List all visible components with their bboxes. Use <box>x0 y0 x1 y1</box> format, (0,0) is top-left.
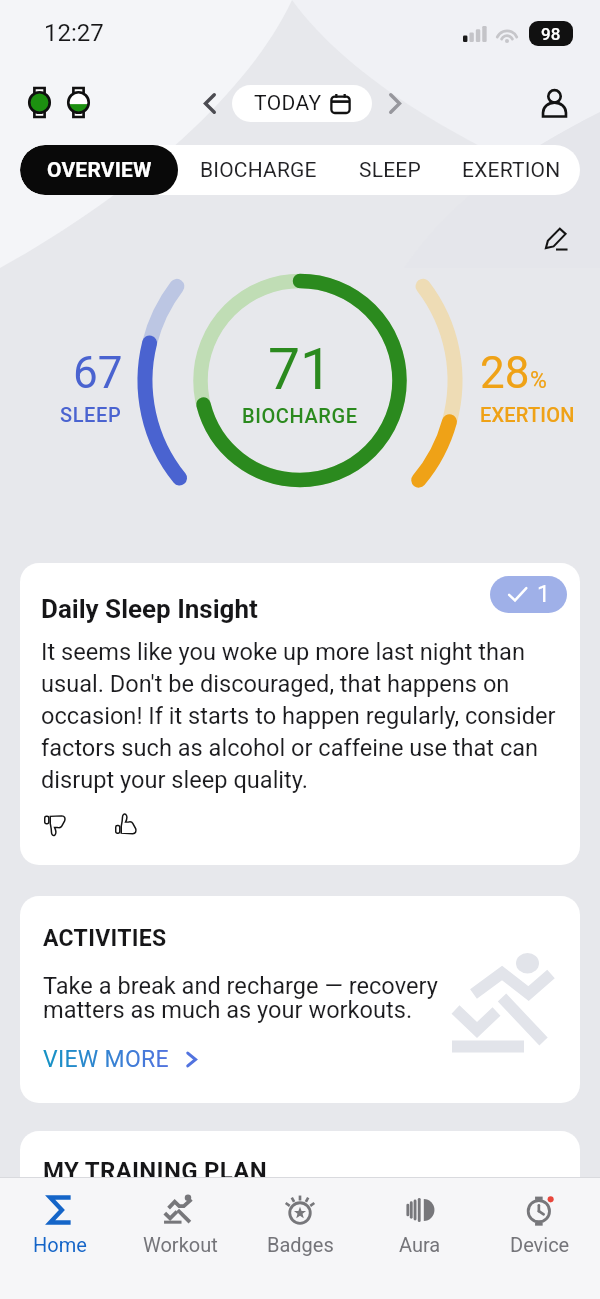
button[interactable]: Previous day <box>191 84 229 122</box>
button[interactable]: VIEW MORE <box>43 1046 200 1073</box>
button[interactable]: TODAY <box>232 85 372 122</box>
staticText: % <box>530 367 547 394</box>
button[interactable]: BIOCHARGE <box>178 145 338 195</box>
button[interactable]: Badges <box>240 1178 360 1299</box>
staticText: Home <box>33 1233 87 1256</box>
button[interactable]: Workout <box>120 1178 240 1299</box>
button[interactable]: EXERTION <box>442 145 580 195</box>
button[interactable]: Next day <box>375 84 413 122</box>
staticText: Aura <box>399 1233 441 1256</box>
staticText: ACTIVITIES <box>43 925 167 952</box>
staticText: MY TRAINING PLAN <box>43 1157 268 1185</box>
staticText: Take a break and recharge — recovery mat… <box>43 972 438 1024</box>
staticText: BIOCHARGE <box>242 404 358 427</box>
button[interactable]: Edit <box>536 218 576 258</box>
staticText: Device <box>510 1233 570 1256</box>
button[interactable]: Daily Sleep Insight <box>20 563 580 865</box>
staticText: 1 <box>537 581 550 608</box>
button[interactable]: Watch battery <box>63 87 94 118</box>
staticText: OVERVIEW <box>47 158 152 183</box>
staticText: 67 <box>73 347 123 399</box>
staticText: EXERTION <box>462 158 561 183</box>
button[interactable]: SLEEP <box>338 145 442 195</box>
staticText: Daily Sleep Insight <box>41 594 258 624</box>
staticText: 12:27 <box>44 19 104 47</box>
staticText: BIOCHARGE <box>200 158 317 183</box>
button[interactable]: 1 <box>490 576 567 613</box>
staticText: It seems like you woke up more last nigh… <box>41 638 559 794</box>
staticText: 71 <box>268 336 333 403</box>
staticText: VIEW MORE <box>43 1046 169 1073</box>
button[interactable]: Home <box>0 1178 120 1299</box>
staticText: TODAY <box>254 91 322 116</box>
staticText: 28 <box>480 347 530 399</box>
button[interactable]: Profile <box>534 83 574 123</box>
staticText: SLEEP <box>60 403 122 426</box>
button[interactable]: ACTIVITIES <box>20 896 580 1103</box>
button[interactable]: Thumbs down <box>41 810 71 840</box>
staticText: 98 <box>541 24 561 44</box>
staticText: EXERTION <box>480 403 575 426</box>
staticText: Workout <box>143 1233 218 1256</box>
button[interactable]: MY TRAINING PLAN <box>20 1131 580 1251</box>
button[interactable]: OVERVIEW <box>20 145 178 195</box>
staticText: Badges <box>267 1233 334 1256</box>
staticText: SLEEP <box>359 158 421 183</box>
button[interactable]: Thumbs up <box>112 810 142 840</box>
button[interactable]: Aura <box>360 1178 480 1299</box>
button[interactable]: Watch battery <box>24 87 55 118</box>
button[interactable]: Device <box>480 1178 600 1299</box>
